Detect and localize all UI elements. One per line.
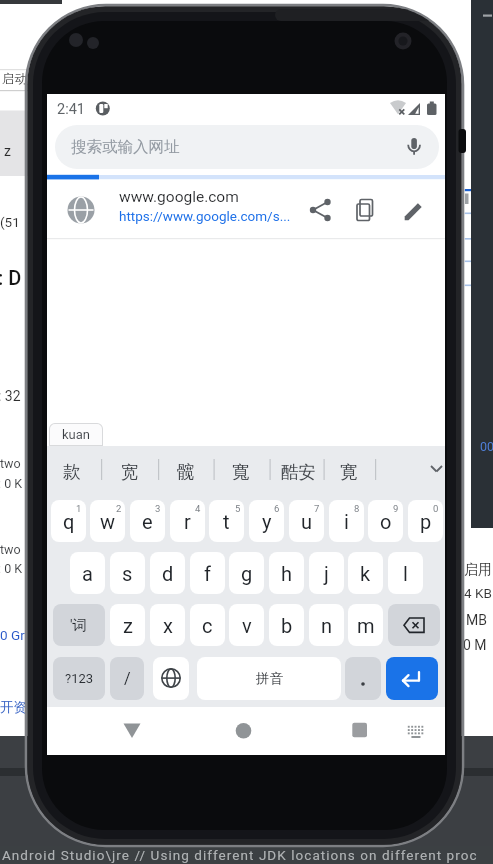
staticText: a	[82, 562, 93, 585]
button[interactable]: b	[269, 604, 304, 646]
button[interactable]: d	[150, 552, 185, 594]
staticText: two	[0, 456, 21, 471]
staticText: MB	[466, 612, 487, 628]
button[interactable]: 寛	[332, 460, 366, 484]
button[interactable]: o	[368, 500, 403, 542]
button[interactable]: r	[170, 500, 205, 542]
button[interactable]: y	[249, 500, 284, 542]
button[interactable]: f	[190, 552, 225, 594]
button[interactable]: z	[110, 604, 145, 646]
staticText: 启动	[2, 71, 27, 87]
button[interactable]: e	[130, 500, 165, 542]
button[interactable]: /	[110, 657, 144, 700]
staticText: 0 Gr	[0, 627, 25, 643]
button[interactable]	[334, 709, 384, 753]
button[interactable]: m	[348, 604, 383, 646]
staticText: o	[380, 510, 392, 533]
button[interactable]: q	[51, 500, 86, 542]
button[interactable]: 拼音	[197, 657, 341, 700]
staticText: z	[4, 143, 11, 159]
button[interactable]: 款	[55, 460, 89, 484]
staticText: 00	[480, 439, 493, 454]
staticText: 1	[76, 503, 82, 514]
button[interactable]: s	[110, 552, 145, 594]
button[interactable]: h	[269, 552, 304, 594]
staticText: 寬	[232, 461, 250, 483]
staticText: g	[241, 562, 253, 585]
staticText: l	[403, 562, 408, 585]
staticText: kuan	[62, 427, 91, 442]
staticText: 2	[116, 503, 122, 514]
staticText: 2:41	[57, 101, 85, 118]
button[interactable]	[153, 657, 189, 700]
staticText: https://www.google.com/s...	[119, 208, 291, 224]
button[interactable]: g	[229, 552, 264, 594]
button[interactable]: t	[209, 500, 244, 542]
button[interactable]: j	[309, 552, 344, 594]
button[interactable]	[47, 184, 445, 238]
staticText: 拼音	[256, 670, 283, 687]
button[interactable]: v	[229, 604, 264, 646]
staticText: : 32	[0, 388, 21, 404]
button[interactable]: n	[309, 604, 344, 646]
staticText: p	[420, 510, 432, 533]
staticText: k	[360, 562, 371, 585]
button[interactable]: 搜索或输入网址	[55, 125, 439, 169]
staticText: 宽	[121, 461, 139, 483]
button[interactable]: 髋	[169, 460, 203, 484]
button[interactable]: k	[348, 552, 383, 594]
staticText: /	[124, 669, 131, 688]
button[interactable]	[386, 657, 438, 700]
button[interactable]: w	[90, 500, 125, 542]
staticText: 寛	[340, 461, 358, 483]
button[interactable]: 酷安	[272, 460, 324, 484]
button[interactable]: p	[408, 500, 443, 542]
staticText: : 0 K	[0, 476, 23, 491]
staticText: d	[162, 562, 174, 585]
staticText: 0	[433, 503, 439, 514]
staticText: ?123	[65, 671, 94, 686]
staticText: v	[242, 614, 252, 637]
staticText: two	[0, 542, 21, 557]
staticText: : D	[0, 266, 22, 289]
staticText: r	[184, 510, 191, 533]
button[interactable]: c	[190, 604, 225, 646]
staticText: x	[163, 614, 173, 637]
staticText: s	[122, 562, 133, 585]
button[interactable]	[218, 709, 268, 753]
staticText: 6	[274, 503, 280, 514]
staticText: 3	[155, 503, 161, 514]
button[interactable]: l	[388, 552, 423, 594]
staticText: z	[123, 614, 133, 637]
button[interactable]: 宽	[113, 460, 147, 484]
staticText: f	[204, 562, 211, 585]
staticText: Android Studio\jre // Using different JD…	[2, 847, 478, 863]
staticText: u	[301, 510, 313, 533]
button[interactable]: 寬	[224, 460, 258, 484]
button[interactable]: '词	[53, 604, 105, 646]
staticText: 款	[63, 461, 81, 483]
staticText: t	[223, 510, 230, 533]
staticText: y	[262, 510, 272, 533]
button[interactable]: a	[70, 552, 105, 594]
staticText: 启用	[464, 561, 492, 579]
button[interactable]: i	[329, 500, 364, 542]
button[interactable]	[345, 657, 381, 700]
staticText: c	[202, 614, 213, 637]
button[interactable]: x	[150, 604, 185, 646]
button[interactable]	[107, 709, 157, 753]
button[interactable]: u	[289, 500, 324, 542]
staticText: 5	[235, 503, 241, 514]
staticText: 8	[354, 503, 360, 514]
button[interactable]	[388, 604, 440, 646]
staticText: h	[281, 562, 293, 585]
staticText: 酷安	[281, 461, 316, 483]
staticText: 开资	[0, 699, 27, 716]
staticText: w	[100, 510, 116, 533]
staticText: 9	[393, 503, 399, 514]
button[interactable]: ?123	[53, 657, 105, 700]
staticText: j	[324, 562, 329, 585]
staticText: (51	[0, 214, 20, 230]
staticText: : 0 K	[0, 561, 23, 576]
staticText: n	[321, 614, 333, 637]
